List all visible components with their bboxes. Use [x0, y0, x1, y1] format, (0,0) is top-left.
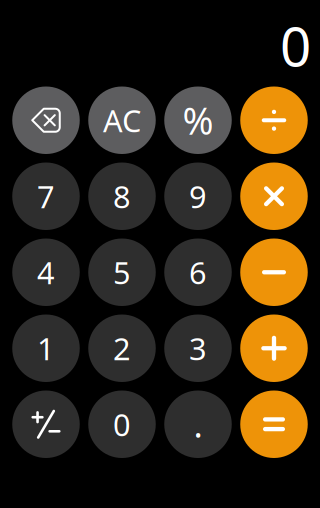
- button[interactable]: Equals: [240, 390, 308, 458]
- staticText: 3: [189, 328, 207, 369]
- staticText: 7: [37, 176, 55, 217]
- staticText: 0: [280, 9, 311, 82]
- button[interactable]: All clear: [88, 86, 156, 154]
- button[interactable]: 3: [164, 314, 232, 382]
- button[interactable]: 8: [88, 162, 156, 230]
- button[interactable]: 7: [12, 162, 80, 230]
- button[interactable]: 0: [88, 390, 156, 458]
- staticText: 2: [113, 328, 131, 369]
- staticText: 0: [113, 404, 131, 445]
- button[interactable]: Multiply: [240, 162, 308, 230]
- staticText: 5: [113, 252, 131, 293]
- staticText: 4: [37, 252, 55, 293]
- button[interactable]: 5: [88, 238, 156, 306]
- button[interactable]: 2: [88, 314, 156, 382]
- button[interactable]: 6: [164, 238, 232, 306]
- button[interactable]: 1: [12, 314, 80, 382]
- button[interactable]: 9: [164, 162, 232, 230]
- button[interactable]: Subtract: [240, 238, 308, 306]
- staticText: 8: [113, 176, 131, 217]
- button[interactable]: Toggle sign: [12, 390, 80, 458]
- button[interactable]: Add: [240, 314, 308, 382]
- button[interactable]: 4: [12, 238, 80, 306]
- button[interactable]: Decimal point: [164, 390, 232, 458]
- staticText: 6: [189, 252, 207, 293]
- button[interactable]: Divide: [240, 86, 308, 154]
- button[interactable]: Delete: [12, 86, 80, 154]
- staticText: .: [193, 401, 202, 447]
- staticText: 9: [189, 176, 207, 217]
- staticText: AC: [103, 100, 141, 141]
- button[interactable]: Percent: [164, 86, 232, 154]
- staticText: 1: [37, 328, 55, 369]
- staticText: %: [182, 95, 213, 145]
